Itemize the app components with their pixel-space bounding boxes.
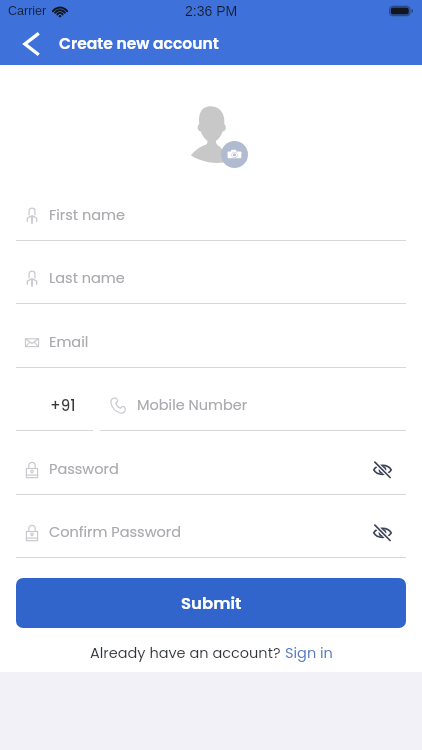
button[interactable]: Change photo [221,141,248,168]
button[interactable]: Mobile Number [100,380,406,430]
staticText: 2:36 PM [185,3,238,19]
button[interactable]: Confirm Password [16,507,406,557]
staticText: Confirm Password [49,522,182,542]
button[interactable]: +91 [16,380,93,430]
staticText: Email [49,332,89,352]
button[interactable]: Submit [16,578,406,628]
staticText: First name [49,205,126,225]
button[interactable]: First name [16,190,406,240]
staticText: Already have an account? [90,643,285,663]
staticText: Password [49,459,119,479]
staticText: Submit [181,592,242,615]
button[interactable]: Last name [16,253,406,303]
button[interactable]: Password [16,444,406,494]
button[interactable]: Sign in [285,643,333,663]
button[interactable]: Show password [358,444,406,494]
staticText: Create new account [59,33,219,55]
staticText: +91 [50,395,76,416]
staticText: Carrier [8,4,47,18]
button[interactable]: Show password [358,507,406,557]
button[interactable]: Email [16,317,406,367]
button[interactable]: Back [22,22,40,65]
staticText: Last name [49,268,125,288]
staticText: Mobile Number [137,395,248,415]
staticText: Sign in [285,643,333,663]
